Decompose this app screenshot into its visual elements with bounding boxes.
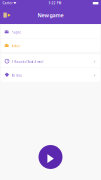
staticText: Carrier: [3, 1, 13, 5]
staticText: All Kits: [11, 74, 21, 77]
staticText: Amber: [11, 44, 20, 48]
staticText: 5:22 PM: [49, 1, 61, 5]
button[interactable]: Start game: [38, 145, 62, 169]
button[interactable]: Purple: [1, 25, 100, 38]
staticText: New game: [37, 12, 63, 19]
button[interactable]: All Kits: [1, 68, 100, 81]
button[interactable]: 2 Rounds (Total 4 min): [1, 54, 100, 68]
staticText: 2 Rounds (Total 4 min): [11, 60, 43, 64]
button[interactable]: Amber: [1, 39, 100, 52]
staticText: Purple: [11, 31, 21, 34]
button[interactable]: Leave game: [0, 10, 15, 21]
